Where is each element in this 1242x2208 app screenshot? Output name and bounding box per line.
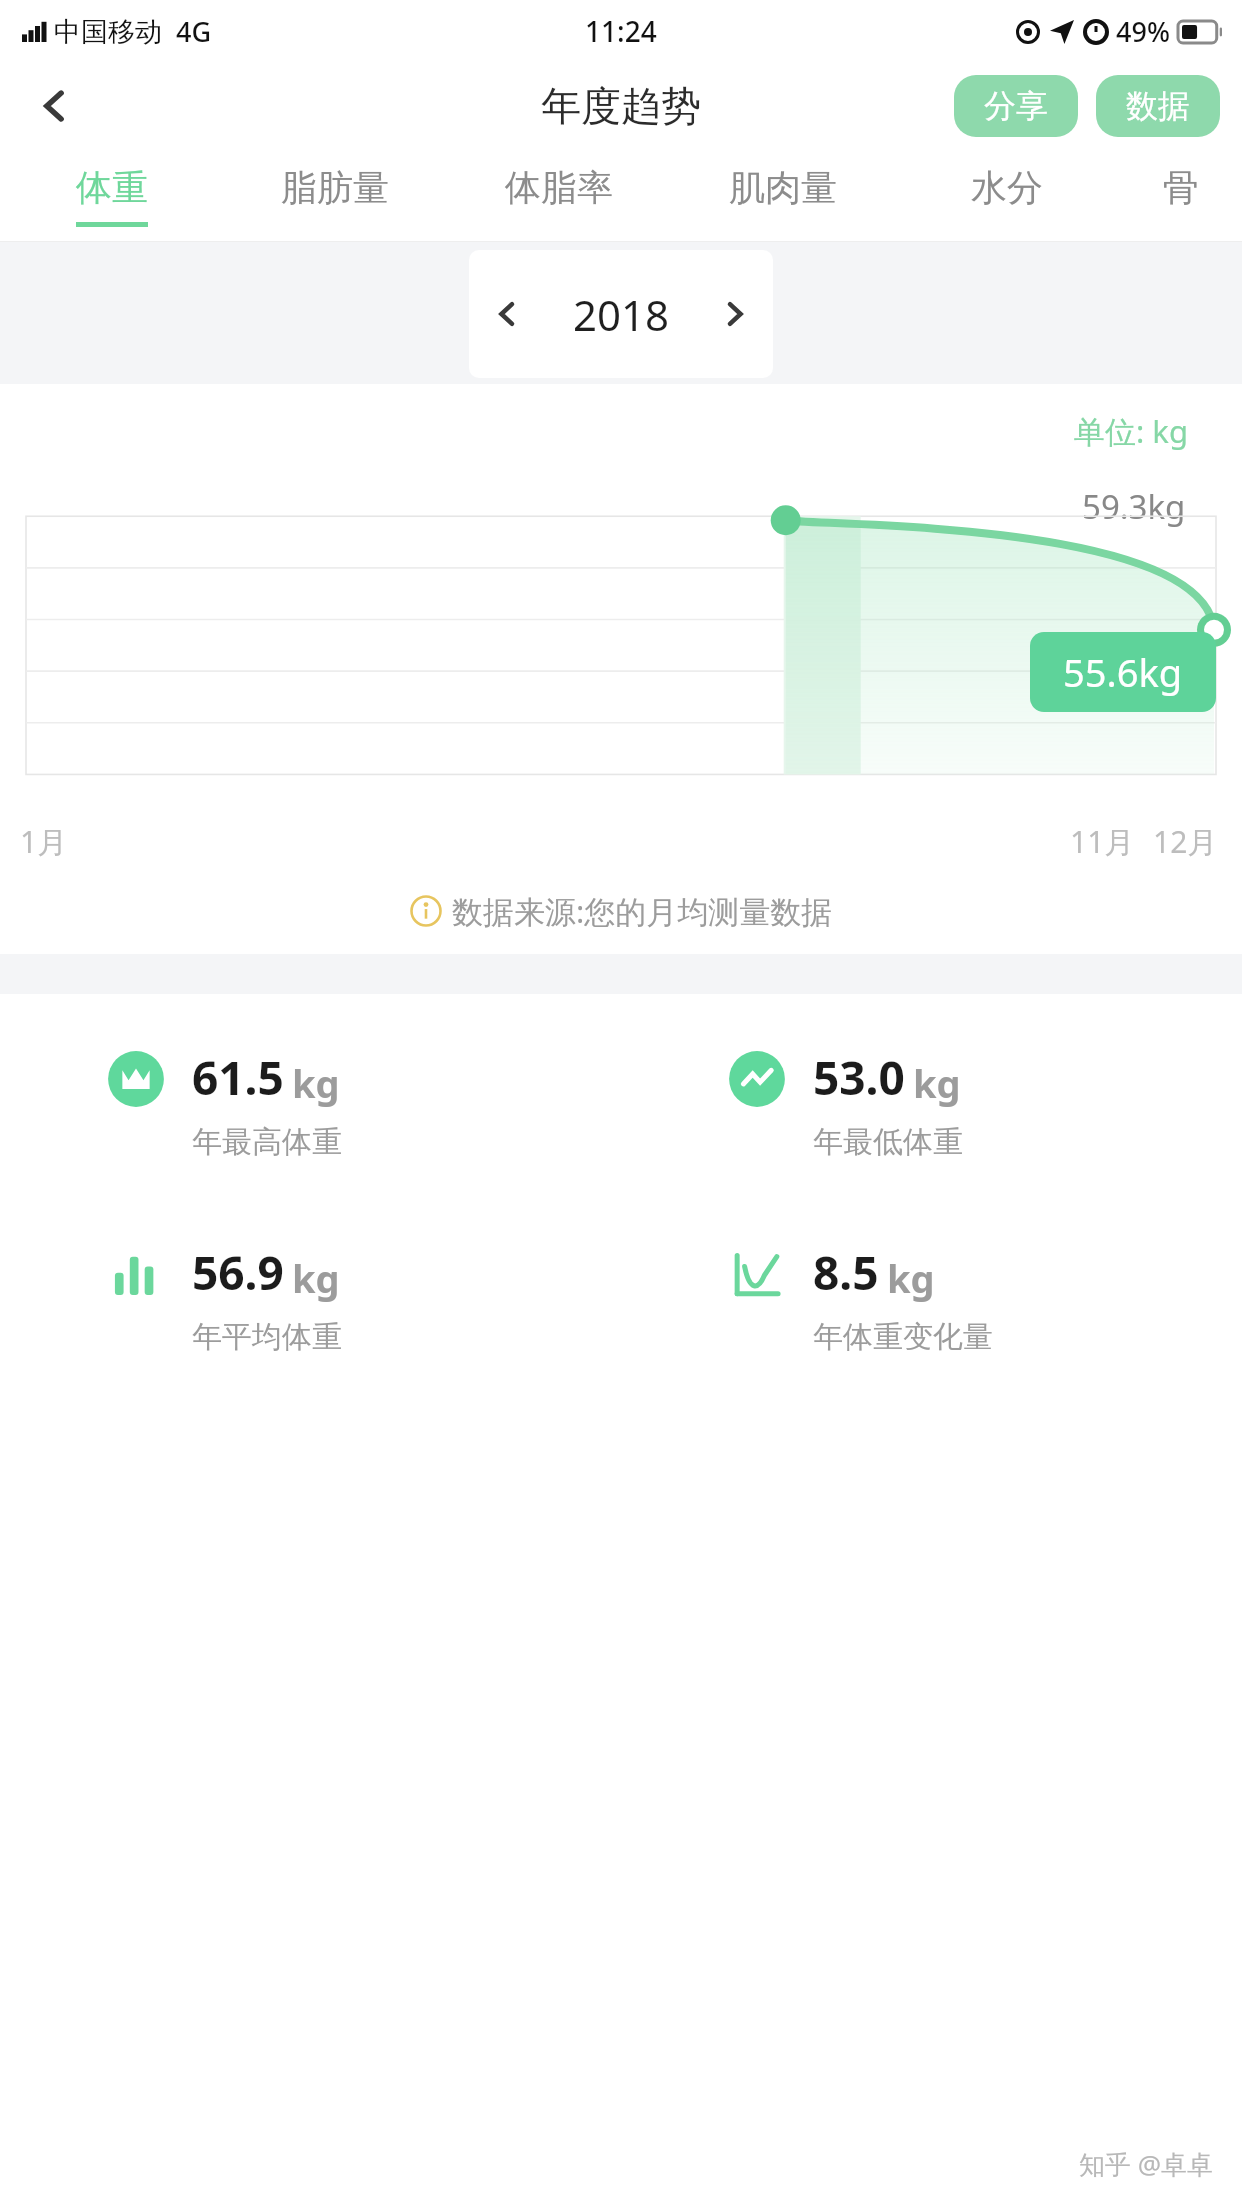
- staticText: 4G: [176, 13, 212, 50]
- button[interactable]: 肌肉量: [671, 150, 895, 242]
- staticText: 肌肉量: [729, 165, 837, 210]
- staticText: 骨: [1163, 165, 1199, 210]
- staticText: 49%: [1116, 13, 1170, 50]
- button[interactable]: 8.5: [725, 1241, 1242, 1356]
- staticText: 8.5: [813, 1241, 879, 1304]
- button[interactable]: 53.0: [725, 1046, 1242, 1161]
- staticText: 中国移动: [54, 15, 162, 49]
- staticText: kg: [913, 1057, 961, 1109]
- staticText: 12月: [1153, 821, 1218, 862]
- staticText: 年最低体重: [813, 1123, 963, 1161]
- button[interactable]: 数据: [1096, 75, 1220, 137]
- button[interactable]: 水分: [895, 150, 1119, 242]
- button[interactable]: 56.9: [104, 1241, 621, 1356]
- staticText: 单位: kg: [1074, 410, 1188, 452]
- staticText: 知乎 @卓卓: [1079, 2146, 1214, 2182]
- staticText: 53.0: [813, 1046, 905, 1109]
- staticText: 年平均体重: [192, 1318, 342, 1356]
- staticText: 数据: [1126, 86, 1190, 126]
- staticText: 年度趋势: [541, 81, 701, 131]
- staticText: 年最高体重: [192, 1123, 342, 1161]
- staticText: 2018: [573, 286, 670, 343]
- staticText: 1月: [20, 821, 68, 862]
- staticText: 体重: [76, 165, 148, 210]
- staticText: kg: [292, 1057, 340, 1109]
- button[interactable]: 脂肪量: [223, 150, 447, 242]
- staticText: 11月: [1070, 821, 1135, 862]
- staticText: 61.5: [192, 1046, 284, 1109]
- staticText: 年体重变化量: [813, 1318, 993, 1356]
- button[interactable]: Back: [20, 71, 90, 141]
- button[interactable]: 骨: [1119, 150, 1242, 242]
- button[interactable]: Next year: [697, 250, 773, 378]
- button[interactable]: 61.5: [104, 1046, 621, 1161]
- staticText: 11:24: [585, 12, 657, 50]
- button[interactable]: Previous year: [469, 250, 545, 378]
- staticText: 56.9: [192, 1241, 284, 1304]
- button[interactable]: 分享: [954, 75, 1078, 137]
- button[interactable]: 体重: [0, 150, 223, 242]
- staticText: 59.3kg: [1082, 484, 1186, 529]
- staticText: 脂肪量: [281, 165, 389, 210]
- staticText: kg: [292, 1252, 340, 1304]
- staticText: kg: [887, 1252, 935, 1304]
- staticText: 55.6kg: [1063, 646, 1183, 698]
- button[interactable]: 体脂率: [447, 150, 671, 242]
- staticText: 体脂率: [505, 165, 613, 210]
- staticText: 数据来源:您的月均测量数据: [452, 890, 833, 932]
- staticText: 水分: [971, 165, 1043, 210]
- staticText: 分享: [984, 86, 1048, 126]
